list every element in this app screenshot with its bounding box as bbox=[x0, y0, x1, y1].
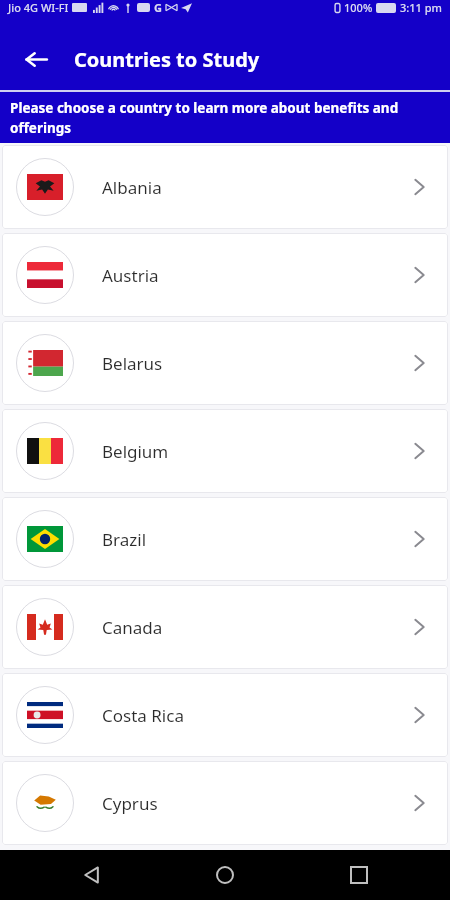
button[interactable]: Back bbox=[70, 854, 112, 896]
staticText: Belgium bbox=[102, 440, 169, 463]
button[interactable]: Open Cyprus bbox=[404, 788, 434, 818]
button[interactable]: Open Canada bbox=[404, 612, 434, 642]
button[interactable]: Back bbox=[14, 37, 58, 81]
button[interactable]: Open Austria bbox=[404, 260, 434, 290]
staticText: Belarus bbox=[102, 352, 163, 375]
button[interactable]: Albania bbox=[2, 145, 448, 229]
staticText: Brazil bbox=[102, 528, 147, 551]
staticText: Costa Rica bbox=[102, 704, 184, 727]
button[interactable]: Open Albania bbox=[404, 172, 434, 202]
staticText: 100% bbox=[344, 0, 373, 15]
button[interactable]: Open Brazil bbox=[404, 524, 434, 554]
button[interactable]: Austria bbox=[2, 233, 448, 317]
staticText: Please choose a country to learn more ab… bbox=[10, 99, 436, 137]
button[interactable]: Canada bbox=[2, 585, 448, 669]
staticText: Austria bbox=[102, 264, 159, 287]
button[interactable]: Home bbox=[204, 854, 246, 896]
button[interactable]: Open Belgium bbox=[404, 436, 434, 466]
button[interactable]: Cyprus bbox=[2, 761, 448, 845]
staticText: G bbox=[154, 0, 162, 15]
staticText: Canada bbox=[102, 616, 163, 639]
button[interactable]: Belgium bbox=[2, 409, 448, 493]
button[interactable]: Open Costa Rica bbox=[404, 700, 434, 730]
staticText: Countries to Study bbox=[74, 46, 260, 73]
staticText: Albania bbox=[102, 176, 162, 199]
button[interactable]: Brazil bbox=[2, 497, 448, 581]
button[interactable]: Open Belarus bbox=[404, 348, 434, 378]
staticText: Cyprus bbox=[102, 792, 158, 815]
button[interactable]: Costa Rica bbox=[2, 673, 448, 757]
button[interactable]: Belarus bbox=[2, 321, 448, 405]
staticText: Jio 4G WI-FI bbox=[8, 0, 69, 15]
staticText: 3:11 pm bbox=[400, 0, 442, 15]
button[interactable]: Recent apps bbox=[338, 854, 380, 896]
